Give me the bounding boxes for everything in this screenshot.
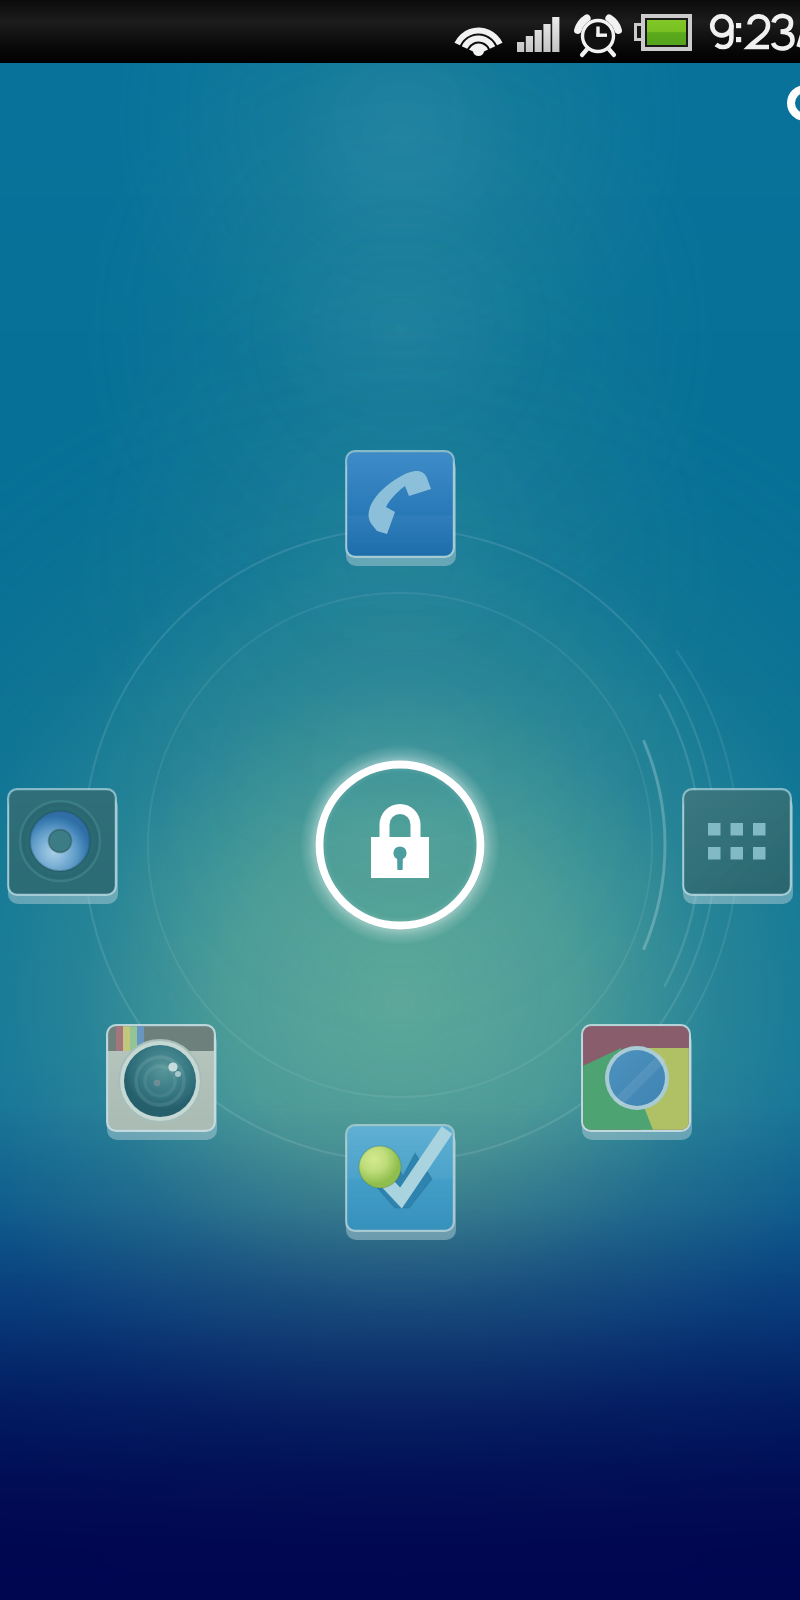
- button[interactable]: Status bar, 9:23 AM: [0, 0, 800, 63]
- button[interactable]: Phone: [345, 450, 461, 568]
- button[interactable]: Unlock: [300, 745, 500, 945]
- button[interactable]: Instagram: [106, 1024, 222, 1142]
- button[interactable]: Music: [7, 788, 123, 906]
- button[interactable]: Chrome: [581, 1024, 697, 1142]
- button[interactable]: All apps: [682, 788, 798, 906]
- button[interactable]: Clock widget: [778, 80, 800, 124]
- button[interactable]: Foursquare: [345, 1124, 461, 1242]
